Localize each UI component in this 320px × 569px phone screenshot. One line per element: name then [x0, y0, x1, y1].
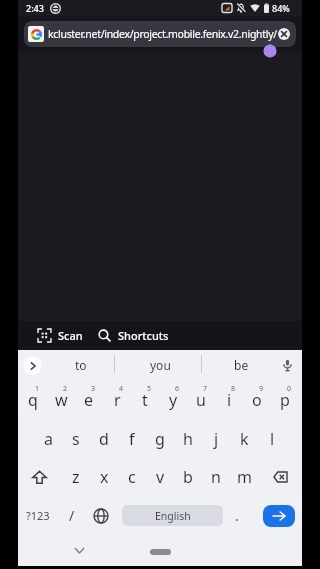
button[interactable]: r: [103, 380, 131, 419]
staticText: d: [99, 428, 109, 450]
staticText: l: [270, 428, 275, 450]
button[interactable]: English: [122, 505, 223, 526]
staticText: f: [129, 428, 135, 450]
button[interactable]: d: [90, 419, 118, 458]
staticText: k: [240, 428, 249, 450]
staticText: Shortcuts: [118, 328, 169, 343]
staticText: v: [156, 466, 165, 488]
staticText: English: [155, 509, 191, 523]
button[interactable]: u: [187, 380, 215, 419]
staticText: j: [214, 428, 219, 450]
staticText: 1: [35, 384, 40, 394]
button[interactable]: q: [19, 380, 47, 419]
staticText: 8: [231, 384, 236, 394]
staticText: Scan: [58, 328, 83, 343]
staticText: 6: [175, 384, 180, 394]
button[interactable]: m: [230, 458, 258, 496]
staticText: 0: [287, 384, 292, 394]
button[interactable]: f: [118, 419, 146, 458]
button[interactable]: Shortcuts: [98, 328, 169, 343]
staticText: h: [183, 428, 193, 450]
button[interactable]: j: [202, 419, 230, 458]
staticText: c: [128, 466, 136, 488]
button[interactable]: t: [131, 380, 159, 419]
button[interactable]: e: [75, 380, 103, 419]
button[interactable]: w: [47, 380, 75, 419]
button[interactable]: g: [146, 419, 174, 458]
staticText: to: [75, 357, 87, 373]
button[interactable]: [150, 549, 171, 555]
button[interactable]: p: [271, 380, 299, 419]
button[interactable]: o: [243, 380, 271, 419]
staticText: 5: [147, 384, 152, 394]
button[interactable]: l: [258, 419, 286, 458]
staticText: u: [196, 389, 206, 411]
staticText: 4: [119, 384, 124, 394]
button[interactable]: [263, 505, 295, 527]
button[interactable]: [278, 28, 290, 40]
staticText: t: [142, 389, 148, 411]
staticText: kcluster.net/index/project.mobile.fenix.…: [48, 27, 278, 41]
button[interactable]: s: [62, 419, 90, 458]
button[interactable]: a: [34, 419, 62, 458]
staticText: r: [114, 389, 121, 411]
button[interactable]: n: [202, 458, 230, 496]
staticText: y: [169, 389, 178, 411]
button[interactable]: /: [58, 496, 86, 535]
staticText: n: [211, 466, 221, 488]
staticText: 2: [63, 384, 68, 394]
button[interactable]: z: [62, 458, 90, 496]
staticText: b: [183, 466, 193, 488]
button[interactable]: y: [159, 380, 187, 419]
staticText: 9: [259, 384, 264, 394]
staticText: 7: [203, 384, 208, 394]
staticText: .: [235, 506, 239, 525]
staticText: w: [55, 389, 68, 411]
button[interactable]: i: [215, 380, 243, 419]
staticText: z: [72, 466, 80, 488]
button[interactable]: v: [146, 458, 174, 496]
button[interactable]: [258, 458, 302, 496]
button[interactable]: [23, 356, 42, 375]
button[interactable]: k: [230, 419, 258, 458]
staticText: p: [280, 389, 290, 411]
staticText: 2:43: [26, 2, 44, 14]
staticText: 84%: [272, 2, 290, 14]
button[interactable]: .: [225, 496, 249, 535]
button[interactable]: [18, 458, 60, 496]
button[interactable]: Scan: [38, 328, 83, 343]
staticText: be: [234, 357, 249, 373]
button[interactable]: kcluster.net/index/project.mobile.fenix.…: [24, 21, 296, 47]
staticText: 3: [91, 384, 96, 394]
staticText: i: [227, 389, 232, 411]
button[interactable]: [281, 359, 294, 372]
staticText: o: [252, 389, 262, 411]
staticText: /: [69, 506, 75, 525]
staticText: ?123: [26, 508, 50, 523]
staticText: x: [100, 466, 109, 488]
button[interactable]: b: [174, 458, 202, 496]
staticText: e: [84, 389, 94, 411]
button[interactable]: x: [90, 458, 118, 496]
button[interactable]: c: [118, 458, 146, 496]
staticText: a: [44, 428, 53, 450]
button[interactable]: h: [174, 419, 202, 458]
button[interactable]: ?123: [18, 496, 58, 535]
staticText: s: [72, 428, 80, 450]
button[interactable]: [86, 496, 116, 535]
staticText: you: [150, 357, 171, 373]
staticText: q: [28, 389, 38, 411]
staticText: m: [237, 466, 252, 488]
staticText: g: [155, 428, 165, 450]
